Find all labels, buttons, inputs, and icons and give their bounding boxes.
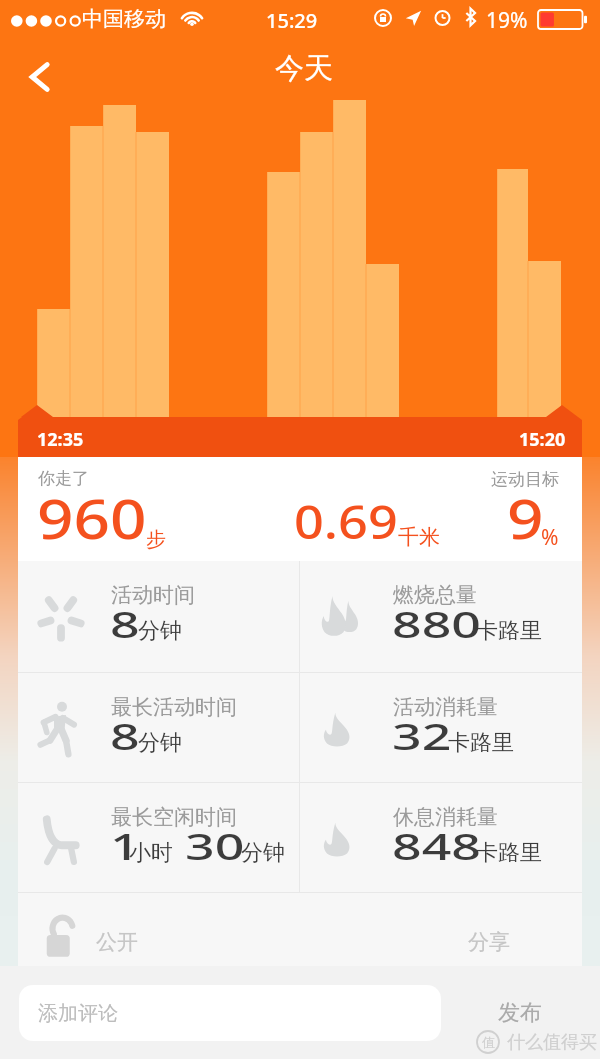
staticText: 12:35 — [37, 427, 84, 452]
staticText: 活动时间 — [111, 582, 195, 608]
staticText: 值 — [482, 1034, 495, 1050]
staticText: 燃烧总量 — [393, 582, 477, 608]
button[interactable]: 休息消耗量 — [300, 783, 582, 892]
button[interactable]: 发布 — [470, 985, 570, 1041]
staticText: 运动目标 — [491, 469, 559, 490]
staticText: 1 — [110, 820, 137, 870]
staticText: 卡路里 — [476, 839, 542, 867]
button[interactable]: 添加评论 — [19, 985, 441, 1041]
staticText: 今天 — [275, 50, 333, 87]
staticText: 什么值得买 — [507, 1031, 597, 1054]
staticText: 分享 — [468, 929, 510, 955]
button[interactable]: Back — [19, 55, 63, 99]
staticText: 最长空闲时间 — [111, 804, 237, 830]
button[interactable]: 活动消耗量 — [300, 673, 582, 782]
staticText: 分钟 — [138, 617, 182, 645]
staticText: 15:20 — [519, 427, 566, 452]
staticText: 0.69 — [294, 491, 415, 552]
staticText: 活动消耗量 — [393, 694, 498, 720]
staticText: 中国移动 — [82, 6, 166, 32]
staticText: 最长活动时间 — [111, 694, 237, 720]
staticText: 880 — [392, 598, 510, 648]
staticText: 19% — [486, 6, 528, 35]
staticText: 千米 — [398, 524, 440, 550]
button[interactable]: 活动时间 — [18, 561, 299, 672]
staticText: 步 — [146, 527, 166, 552]
staticText: 960 — [37, 480, 163, 555]
staticText: % — [541, 523, 559, 552]
staticText: 卡路里 — [476, 617, 542, 645]
staticText: 添加评论 — [38, 1001, 118, 1026]
button[interactable]: 公开 — [18, 918, 158, 966]
staticText: 分钟 — [138, 729, 182, 757]
staticText: 分钟 — [241, 839, 285, 867]
staticText: 发布 — [498, 999, 542, 1027]
button[interactable]: 最长空闲时间 — [18, 783, 299, 892]
staticText: 小时 — [129, 839, 173, 867]
staticText: 32 — [392, 710, 470, 760]
staticText: 休息消耗量 — [393, 804, 498, 830]
staticText: 8 — [110, 710, 149, 760]
staticText: 你走了 — [38, 468, 89, 489]
staticText: 848 — [392, 820, 510, 870]
staticText: 公开 — [96, 929, 138, 955]
button[interactable]: 燃烧总量 — [300, 561, 582, 672]
staticText: 30 — [185, 820, 263, 870]
staticText: 9 — [507, 480, 546, 555]
staticText: 15:29 — [266, 7, 318, 34]
button[interactable]: 最长活动时间 — [18, 673, 299, 782]
staticText: 8 — [110, 598, 149, 648]
button[interactable]: 分享 — [434, 918, 544, 966]
staticText: 卡路里 — [448, 729, 514, 757]
